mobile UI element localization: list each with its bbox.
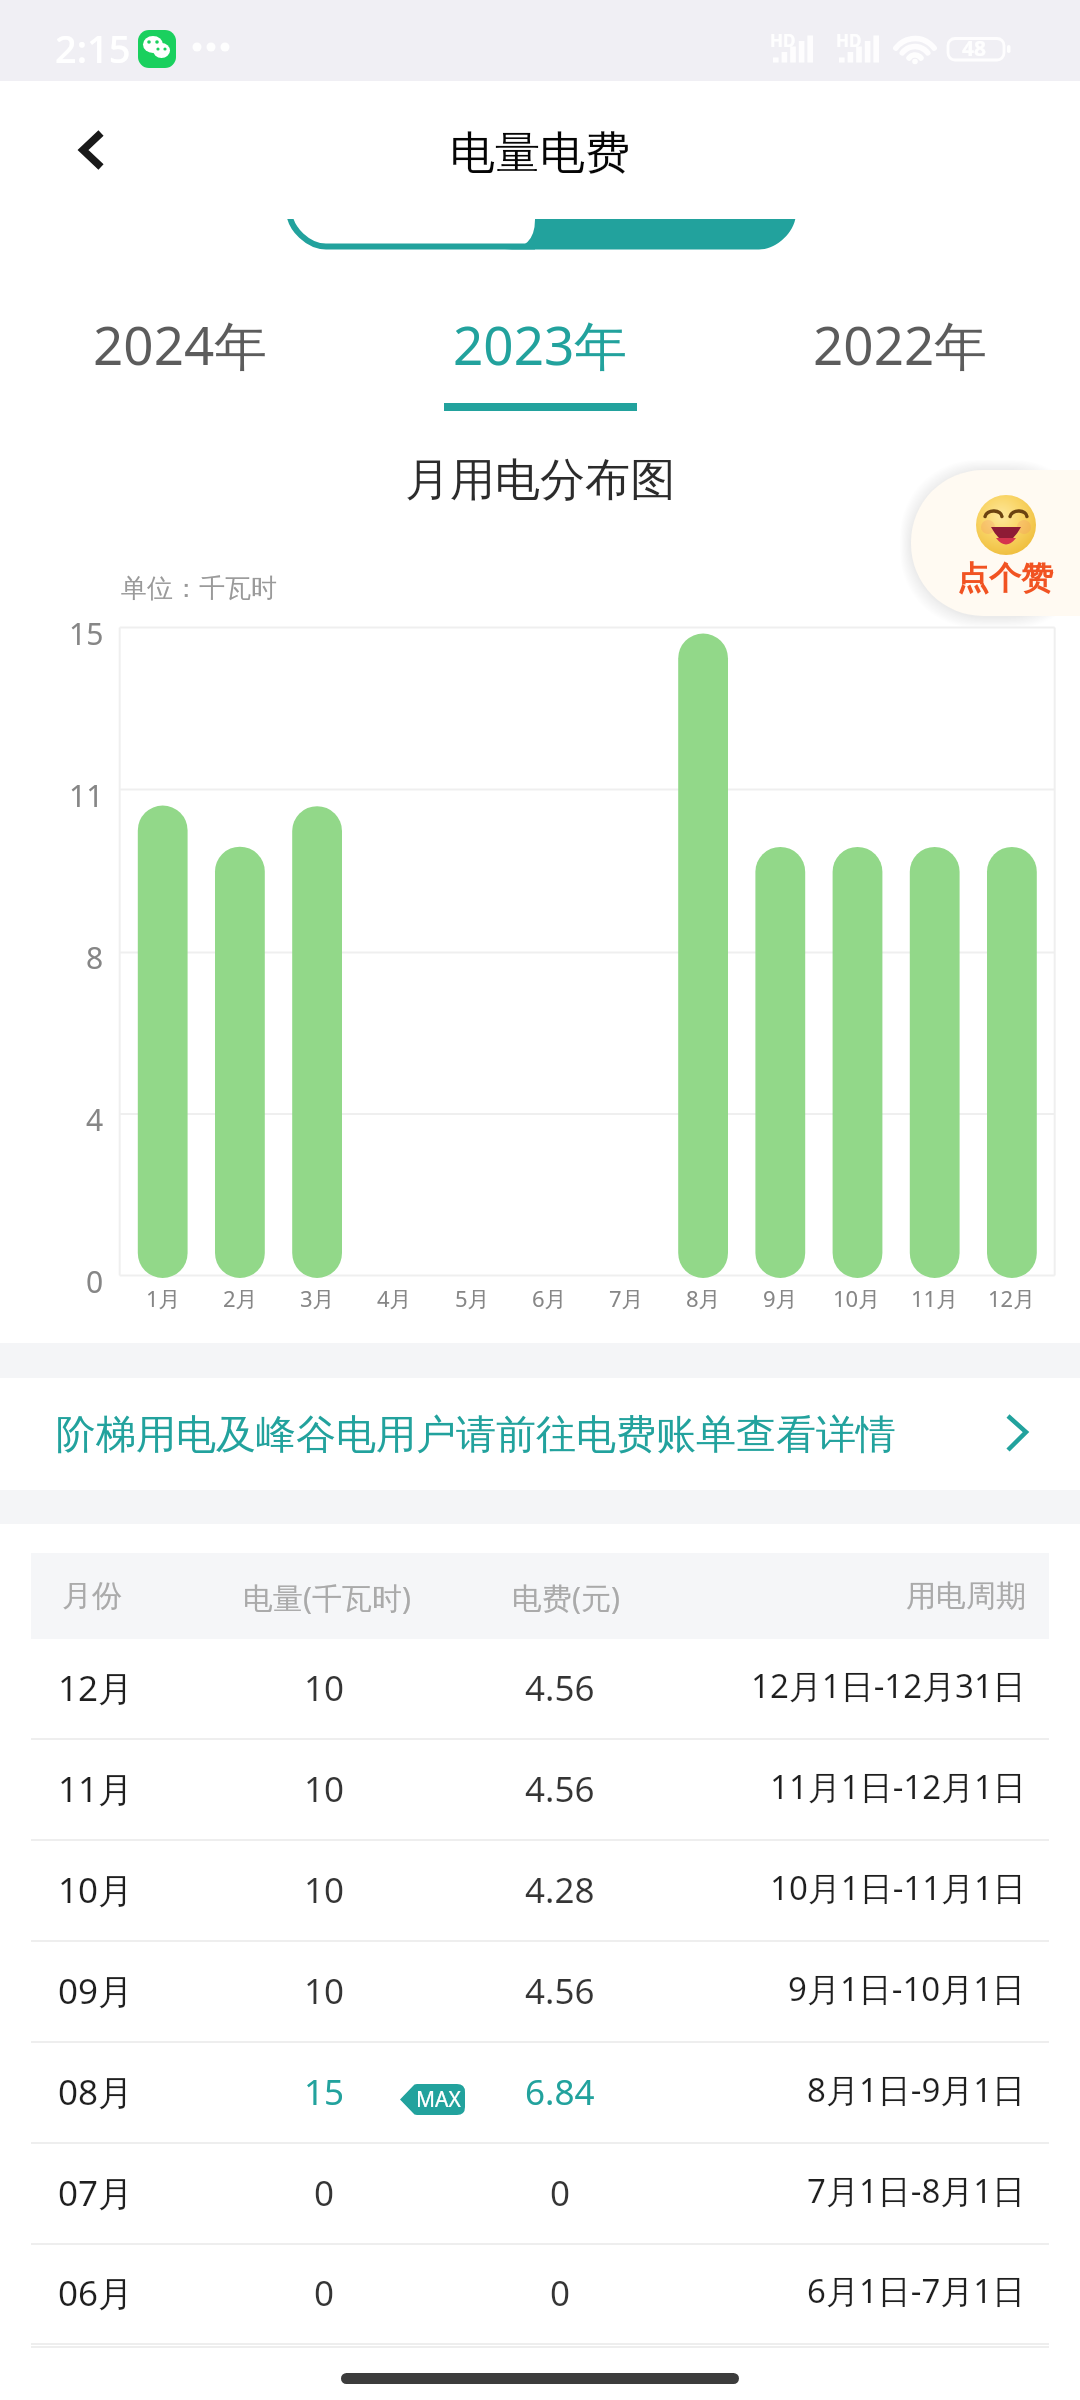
staticText: 10月 (833, 1283, 881, 1313)
staticText: 8月1日-9月1日 (807, 2067, 1026, 2112)
button[interactable]: 阶梯用电及峰谷电用户请前往电费账单查看详情 (0, 1378, 1080, 1490)
staticText: 10月 (58, 1866, 134, 1914)
staticText: 4.56 (525, 1664, 595, 1712)
button[interactable]: 12月 (0, 1639, 1080, 1739)
staticText: 9月1日-10月1日 (788, 1966, 1026, 2011)
staticText: 11月 (58, 1765, 134, 1813)
staticText: 48 (962, 34, 987, 63)
staticText: 9月 (763, 1283, 798, 1313)
staticText: 5月 (455, 1283, 490, 1313)
staticText: 阶梯用电及峰谷电用户请前往电费账单查看详情 (56, 1409, 896, 1459)
staticText: 月用电分布图 (405, 452, 675, 509)
staticText: MAX (416, 2085, 461, 2114)
staticText: 07月 (58, 2169, 134, 2217)
staticText: 4 (86, 1099, 104, 1140)
staticText: 0 (314, 2169, 335, 2217)
staticText: 3月 (300, 1283, 335, 1313)
staticText: HD (770, 29, 796, 52)
staticText: 10 (304, 1664, 345, 1712)
staticText: 11月1日-12月1日 (770, 1764, 1026, 1809)
staticText: 12月1日-12月31日 (751, 1663, 1026, 1708)
staticText: 2024年 (93, 308, 268, 380)
button[interactable]: 2024年 (0, 308, 360, 418)
staticText: 电量(千瓦时) (243, 1577, 411, 1618)
staticText: 电费(元) (512, 1577, 620, 1618)
staticText: 09月 (58, 1967, 134, 2015)
staticText: 6.84 (525, 2068, 595, 2116)
staticText: 2:15 (55, 22, 131, 74)
staticText: 6月 (532, 1283, 567, 1313)
staticText: 单位：千瓦时 (121, 572, 277, 605)
staticText: 10 (304, 1967, 345, 2015)
staticText: 10月1日-11月1日 (770, 1865, 1026, 1910)
button[interactable]: 2023年 (360, 308, 720, 418)
staticText: 月份 (62, 1577, 122, 1615)
staticText: 8月 (686, 1283, 721, 1313)
staticText: 12月 (58, 1664, 134, 1712)
staticText: 06月 (58, 2269, 134, 2317)
staticText: 2月 (223, 1283, 258, 1313)
button[interactable]: 10月 (0, 1841, 1080, 1941)
staticText: 7月1日-8月1日 (807, 2168, 1026, 2213)
button[interactable]: 08月 (0, 2043, 1080, 2143)
staticText: 4.56 (525, 1967, 595, 2015)
button[interactable]: 07月 (0, 2144, 1080, 2244)
staticText: 8 (86, 937, 104, 978)
staticText: 2023年 (453, 308, 628, 380)
staticText: 2022年 (813, 308, 988, 380)
button[interactable]: 06月 (0, 2244, 1080, 2344)
staticText: 0 (550, 2269, 571, 2317)
staticText: 10 (304, 1866, 345, 1914)
staticText: 4.56 (525, 1765, 595, 1813)
staticText: 12月 (988, 1283, 1036, 1313)
staticText: 0 (550, 2169, 571, 2217)
staticText: 4月 (377, 1283, 412, 1313)
staticText: 7月 (609, 1283, 644, 1313)
staticText: 11月 (911, 1283, 959, 1313)
staticText: 15 (304, 2068, 345, 2116)
staticText: 6月1日-7月1日 (807, 2268, 1026, 2313)
staticText: 电量电费 (450, 125, 630, 182)
staticText: 0 (314, 2269, 335, 2317)
button[interactable]: Like (911, 470, 1080, 616)
staticText: 4.28 (525, 1866, 595, 1914)
staticText: 08月 (58, 2068, 134, 2116)
staticText: 1月 (146, 1283, 181, 1313)
button[interactable]: 09月 (0, 1942, 1080, 2042)
button[interactable]: 11月 (0, 1740, 1080, 1840)
staticText: 点个赞 (957, 558, 1053, 598)
staticText: 10 (304, 1765, 345, 1813)
staticText: 15 (69, 613, 104, 654)
staticText: 11 (69, 775, 104, 816)
button[interactable]: Back (60, 118, 124, 182)
staticText: HD (836, 29, 862, 52)
staticText: 用电周期 (906, 1577, 1026, 1615)
button[interactable]: 2022年 (720, 308, 1080, 418)
staticText: 0 (86, 1261, 104, 1302)
